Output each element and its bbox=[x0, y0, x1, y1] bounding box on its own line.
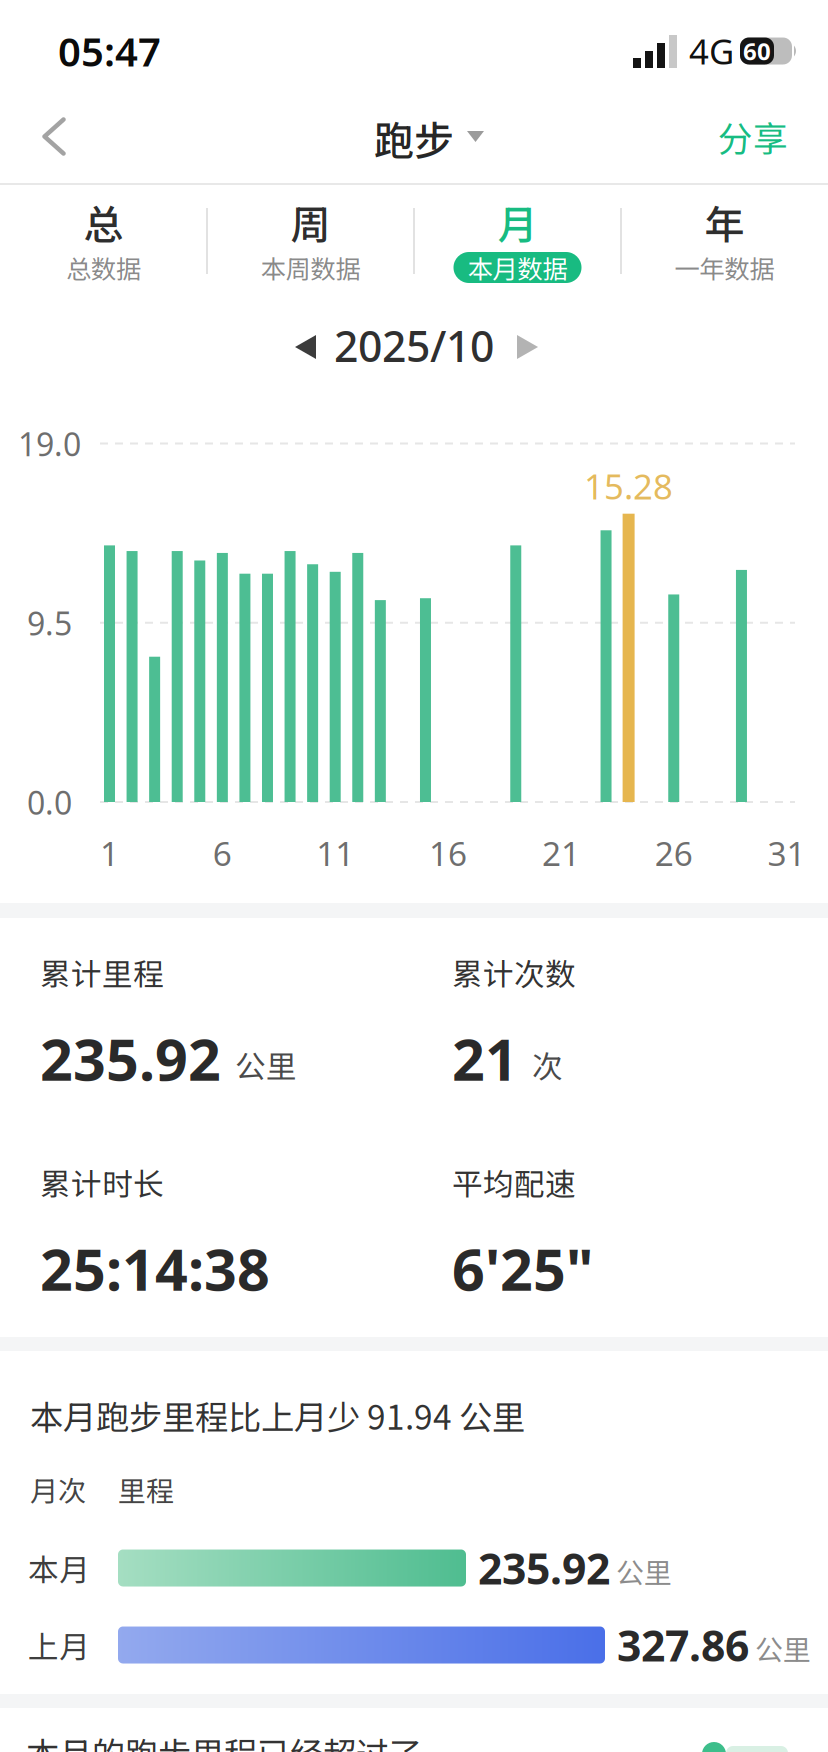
staticText: 25:14:38 bbox=[40, 1230, 270, 1306]
staticText: 本周数据 bbox=[260, 249, 360, 286]
staticText: 月次 bbox=[30, 1469, 86, 1509]
staticText: 4G bbox=[689, 28, 734, 74]
staticText: 21 bbox=[542, 831, 580, 875]
staticText: 6 bbox=[213, 831, 232, 875]
staticText: 年 bbox=[704, 193, 744, 251]
staticText: 累计里程 bbox=[40, 950, 164, 994]
staticText: 19.0 bbox=[18, 422, 81, 465]
staticText: 0.0 bbox=[27, 781, 72, 823]
staticText: 周 bbox=[290, 193, 330, 251]
staticText: 里程 bbox=[118, 1469, 174, 1509]
staticText: 05:47 bbox=[58, 24, 161, 77]
staticText: 月 bbox=[497, 193, 537, 251]
staticText: 327.86 bbox=[617, 1617, 749, 1673]
staticText: 235.92 bbox=[478, 1540, 610, 1596]
staticText: 上月 bbox=[28, 1623, 90, 1667]
staticText: 跑步 bbox=[374, 109, 454, 167]
button[interactable]: 总 bbox=[0, 185, 207, 300]
staticText: 6'25" bbox=[452, 1230, 593, 1306]
staticText: 累计次数 bbox=[452, 950, 576, 994]
staticText: 分享 bbox=[718, 111, 788, 162]
staticText: 235.92 bbox=[40, 1020, 221, 1096]
staticText: 次 bbox=[532, 1042, 563, 1086]
staticText: 公里 bbox=[616, 1551, 672, 1591]
staticText: 本月的跑步里程已经超过了 bbox=[26, 1728, 422, 1752]
staticText: 2025/10 bbox=[334, 317, 494, 374]
button[interactable]: 月 bbox=[414, 185, 621, 300]
staticText: 累计时长 bbox=[40, 1160, 164, 1204]
button[interactable]: 下个月 bbox=[517, 335, 538, 359]
button[interactable]: 跑步 bbox=[0, 90, 828, 183]
staticText: 15.28 bbox=[584, 463, 673, 509]
staticText: 公里 bbox=[755, 1628, 811, 1668]
staticText: 总数据 bbox=[66, 249, 141, 286]
button[interactable]: 周 bbox=[207, 185, 414, 300]
staticText: 公里 bbox=[235, 1042, 297, 1086]
staticText: 1 bbox=[100, 831, 119, 875]
button[interactable]: 上个月 bbox=[295, 335, 316, 359]
staticText: 本月数据 bbox=[467, 249, 567, 286]
staticText: 31 bbox=[768, 831, 806, 875]
button[interactable]: 年 bbox=[621, 185, 828, 300]
staticText: 本月 bbox=[28, 1546, 90, 1590]
button[interactable]: 分享 bbox=[718, 111, 828, 162]
staticText: 26 bbox=[655, 831, 693, 875]
staticText: 21 bbox=[452, 1020, 518, 1096]
staticText: 总 bbox=[83, 193, 123, 251]
staticText: 平均配速 bbox=[452, 1160, 576, 1204]
staticText: 11 bbox=[316, 831, 354, 875]
staticText: 9.5 bbox=[27, 602, 72, 644]
button[interactable]: 返回 bbox=[0, 106, 84, 166]
staticText: 16 bbox=[429, 831, 467, 875]
staticText: 一年数据 bbox=[674, 249, 774, 286]
staticText: 本月跑步里程比上月少 91.94 公里 bbox=[30, 1391, 525, 1439]
staticText: 60 bbox=[743, 35, 771, 67]
